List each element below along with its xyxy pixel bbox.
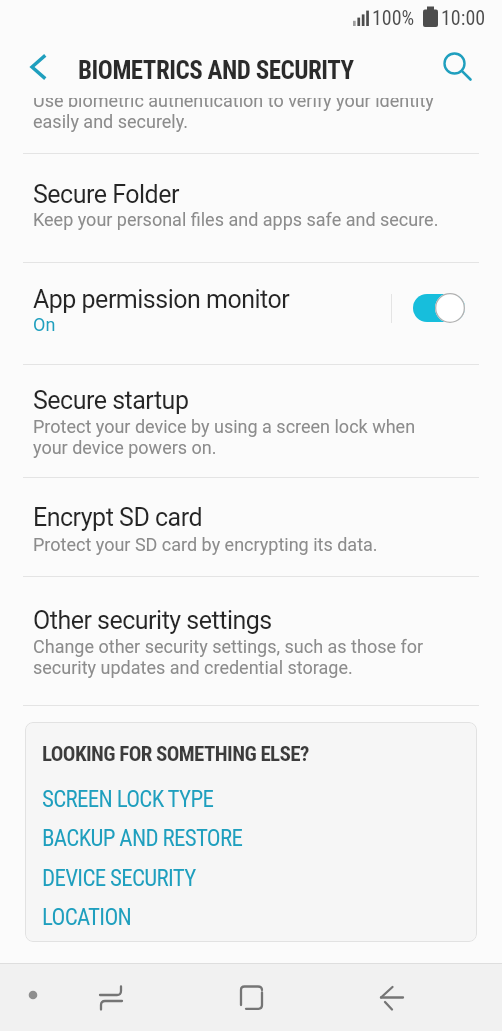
- button[interactable]: [413, 294, 465, 322]
- staticText: App permission monitor: [33, 285, 290, 314]
- staticText: Secure startup: [33, 386, 189, 415]
- button[interactable]: [0, 263, 502, 364]
- staticText: Change other security settings, such as …: [33, 636, 424, 678]
- staticText: Encrypt SD card: [33, 503, 203, 532]
- button[interactable]: [0, 365, 502, 477]
- staticText: Protect your SD card by encrypting its d…: [33, 534, 378, 555]
- button[interactable]: [0, 577, 502, 687]
- button[interactable]: [436, 45, 480, 87]
- staticText: On: [33, 314, 56, 335]
- staticText: Other security settings: [33, 606, 272, 635]
- button[interactable]: [90, 975, 132, 1019]
- staticText: 100%: [372, 6, 415, 29]
- button[interactable]: [0, 478, 502, 576]
- staticText: Use biometric authentication to verify y…: [33, 90, 434, 132]
- button[interactable]: [16, 48, 56, 86]
- staticText: 10:00: [441, 6, 486, 29]
- staticText: Secure Folder: [33, 180, 179, 209]
- button[interactable]: [0, 154, 502, 262]
- staticText: BIOMETRICS AND SECURITY: [78, 56, 354, 85]
- button[interactable]: [370, 975, 412, 1019]
- staticText: Protect your device by using a screen lo…: [33, 416, 416, 458]
- button[interactable]: [230, 975, 272, 1019]
- staticText: Keep your personal files and apps safe a…: [33, 209, 439, 230]
- staticText: LOOKING FOR SOMETHING ELSE?: [42, 742, 309, 767]
